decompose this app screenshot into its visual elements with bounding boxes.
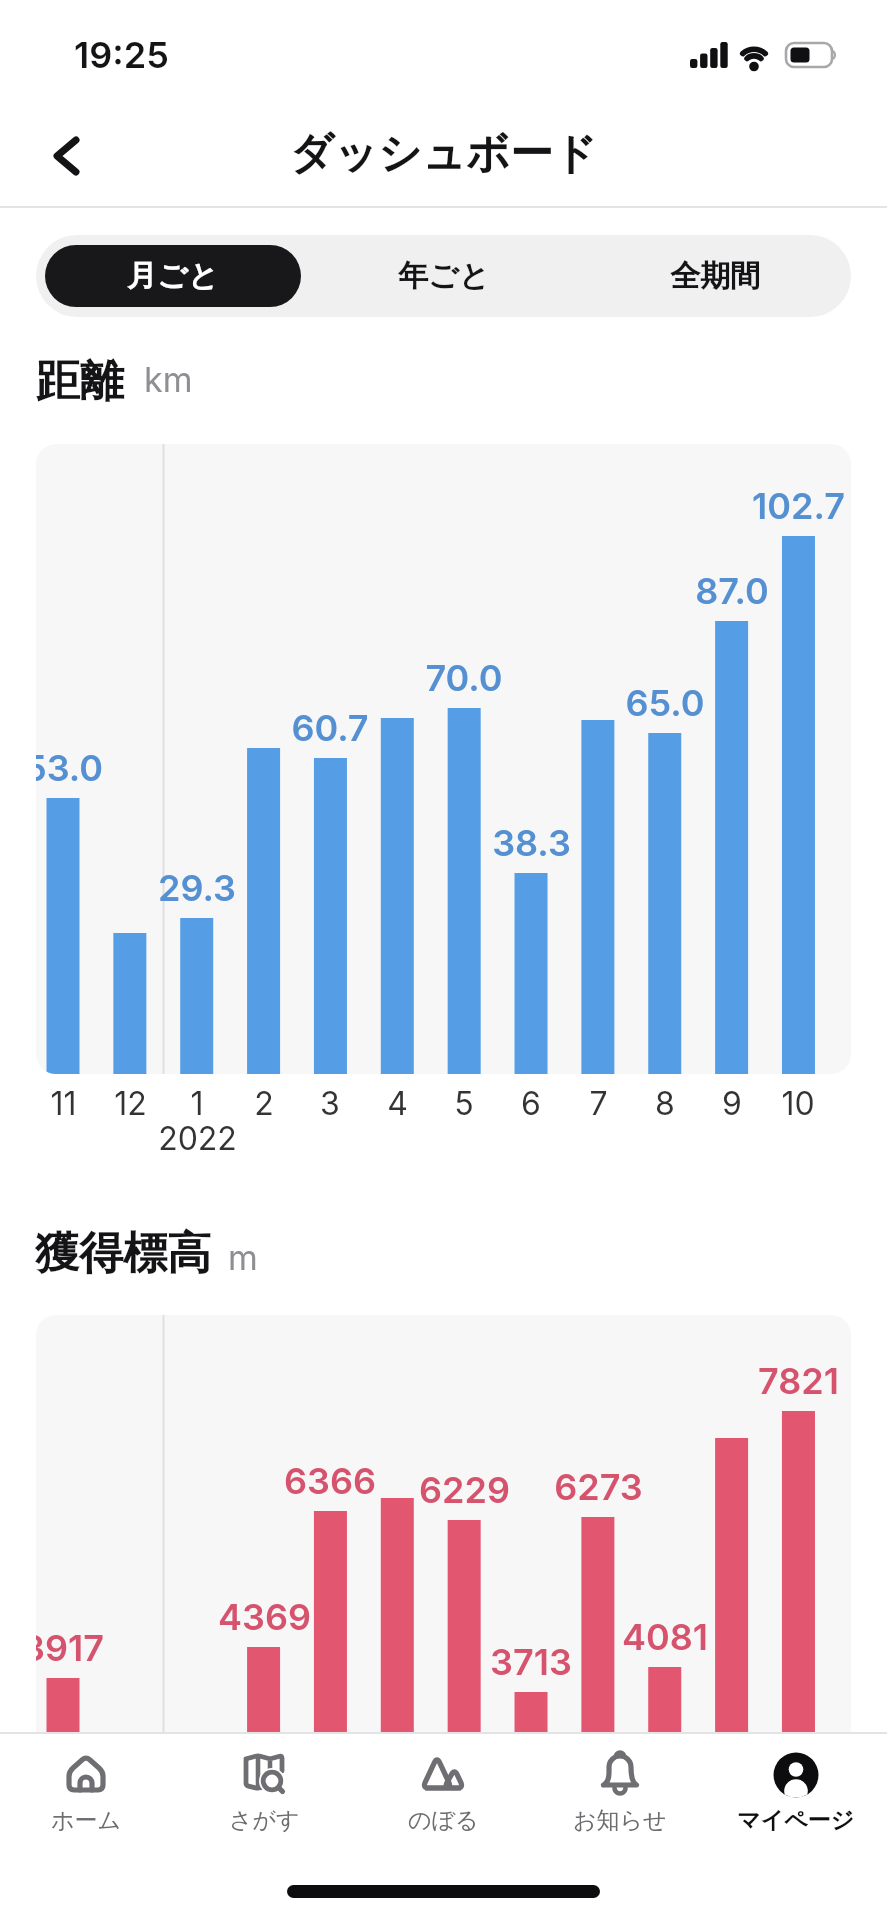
staticText: 4 xyxy=(387,1084,408,1123)
staticText: 102.7 xyxy=(752,484,845,528)
staticText: 獲得標高 xyxy=(35,1226,211,1281)
button[interactable]: マイページ xyxy=(716,1744,876,1840)
staticText: 4081 xyxy=(622,1615,708,1659)
staticText: 29.3 xyxy=(158,866,236,910)
button[interactable]: 月ごと xyxy=(45,245,301,307)
button[interactable]: 全期間 xyxy=(579,235,851,317)
staticText: 年ごと xyxy=(398,257,490,295)
button[interactable] xyxy=(38,126,96,184)
staticText: 6366 xyxy=(284,1459,376,1503)
staticText: 38.3 xyxy=(492,821,571,865)
staticText: ホーム xyxy=(51,1806,122,1835)
staticText: 3713 xyxy=(490,1640,572,1684)
staticText: 3917 xyxy=(36,1626,104,1670)
staticText: 6 xyxy=(521,1084,541,1123)
staticText: 5 xyxy=(454,1084,474,1123)
staticText: お知らせ xyxy=(573,1806,667,1835)
staticText: 53.0 xyxy=(36,746,103,790)
staticText: 8 xyxy=(655,1084,675,1123)
staticText: ダッシュボード xyxy=(290,127,598,181)
staticText: 10 xyxy=(781,1084,815,1123)
staticText: 3 xyxy=(320,1084,340,1123)
staticText: 距離 xyxy=(36,354,124,409)
staticText: m xyxy=(228,1237,258,1278)
button[interactable]: お知らせ xyxy=(540,1744,700,1840)
staticText: 4369 xyxy=(218,1595,311,1639)
staticText: のぼる xyxy=(408,1806,479,1835)
button[interactable]: さがす xyxy=(184,1744,344,1840)
staticText: km xyxy=(144,359,193,400)
staticText: マイページ xyxy=(737,1806,855,1835)
staticText: 65.0 xyxy=(625,681,705,725)
staticText: 6273 xyxy=(554,1465,643,1509)
staticText: 11 xyxy=(50,1084,77,1123)
staticText: 7 xyxy=(589,1084,608,1123)
staticText: 6229 xyxy=(419,1468,510,1512)
staticText: さがす xyxy=(229,1806,300,1835)
staticText: 12 xyxy=(114,1084,147,1123)
staticText: 60.7 xyxy=(291,706,369,750)
staticText: 2022 xyxy=(158,1119,237,1158)
staticText: 全期間 xyxy=(670,257,760,295)
staticText: 87.0 xyxy=(695,569,769,613)
staticText: 1 xyxy=(190,1084,204,1123)
button[interactable]: ホーム xyxy=(6,1744,166,1840)
staticText: 70.0 xyxy=(425,656,503,700)
staticText: 19:25 xyxy=(74,33,169,77)
staticText: 2 xyxy=(254,1084,274,1123)
staticText: 7821 xyxy=(758,1359,839,1403)
button[interactable]: のぼる xyxy=(363,1744,523,1840)
button[interactable]: 年ごと xyxy=(308,235,580,317)
staticText: 月ごと xyxy=(127,257,219,295)
staticText: 9 xyxy=(722,1084,742,1123)
